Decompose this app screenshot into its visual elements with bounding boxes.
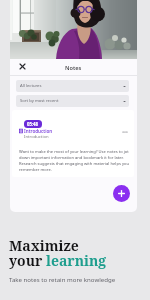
staticText: 05:48 (27, 121, 39, 127)
button[interactable]: All lectures (16, 80, 129, 92)
button[interactable]: 05:48 (12, 110, 134, 177)
button[interactable]: Sort by most recent (16, 95, 129, 107)
button[interactable]: More options (120, 127, 130, 137)
staticText: Introduction (24, 134, 49, 140)
staticText: Introduction (24, 128, 53, 134)
staticText: Want to make the most of your learning? … (19, 149, 131, 173)
staticText: Take notes to retain more knowledge (9, 275, 116, 283)
button[interactable]: Add note (113, 185, 130, 202)
staticText: All lectures (20, 83, 42, 89)
staticText: Maximize your learning (9, 236, 107, 270)
staticText: Sort by most recent (20, 98, 59, 104)
staticText: Notes (65, 64, 82, 72)
button[interactable]: Close (17, 61, 28, 72)
